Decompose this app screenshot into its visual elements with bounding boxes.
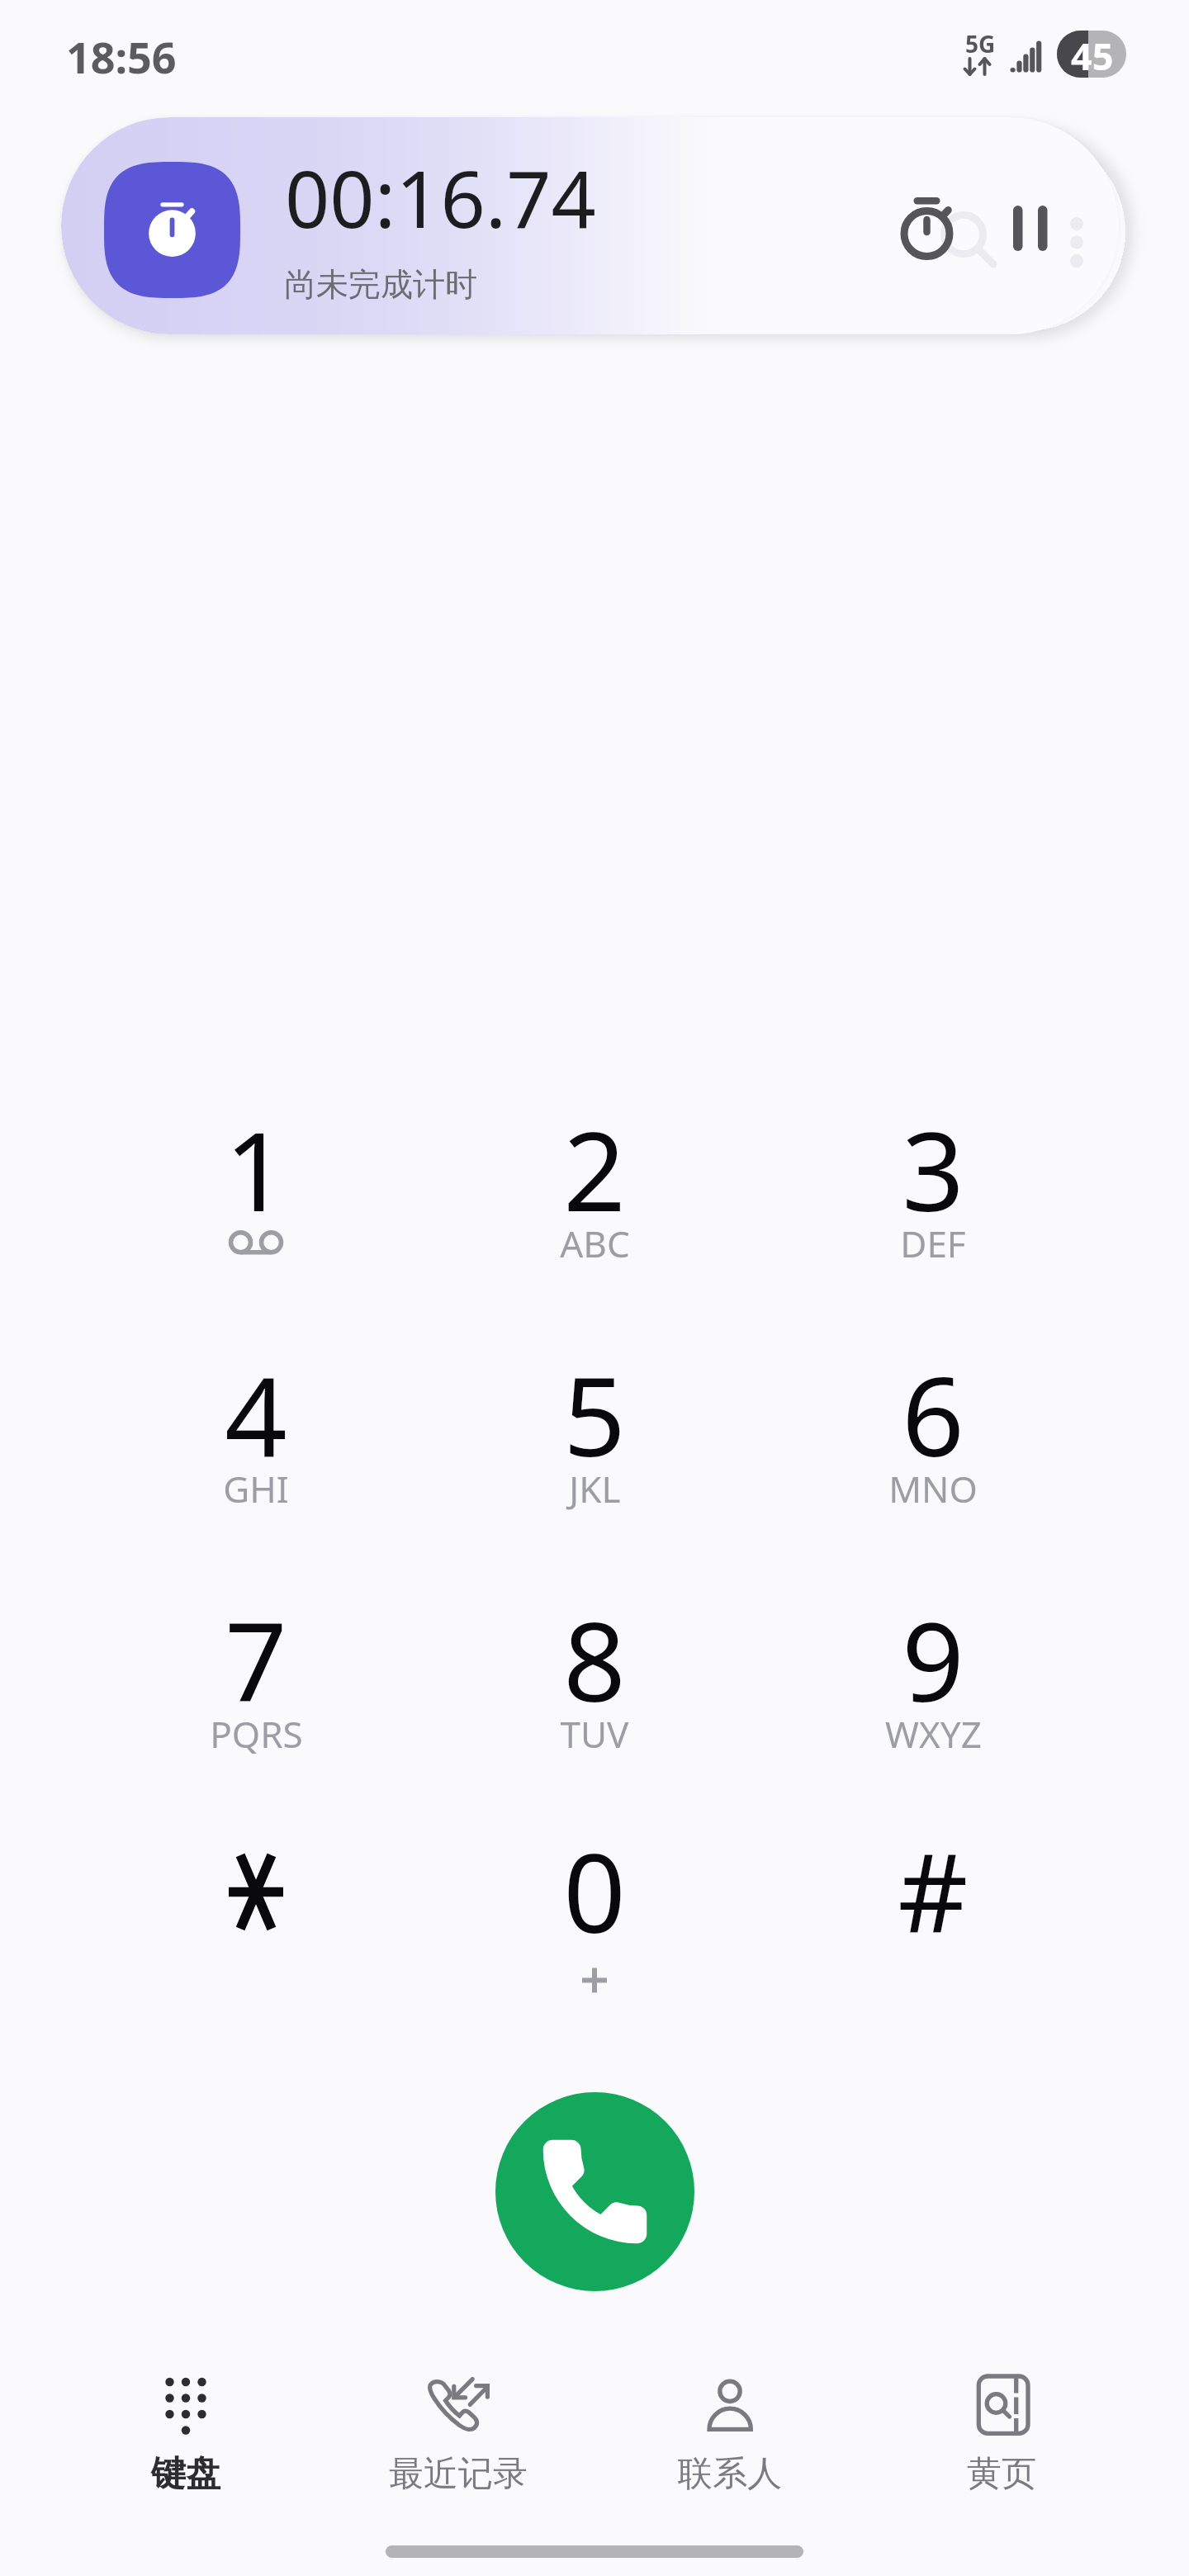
staticText: 2 (563, 1095, 626, 1243)
staticText: WXYZ (885, 1709, 982, 1759)
staticText: 3 (902, 1095, 964, 1243)
staticText: 18:56 (66, 27, 177, 86)
staticText: MNO (888, 1464, 978, 1513)
staticText: 7 (225, 1585, 287, 1734)
button[interactable]: More options (1055, 183, 1098, 274)
staticText: 4 (225, 1340, 287, 1489)
button[interactable]: 5 (454, 1286, 735, 1501)
button[interactable]: Lap (879, 175, 986, 282)
button[interactable]: 黄页 (865, 2368, 1138, 2525)
button[interactable]: Pause (999, 183, 1054, 274)
staticText: GHI (223, 1464, 289, 1513)
staticText: 尚未完成计时 (284, 264, 477, 305)
button[interactable]: 7 (116, 1532, 396, 1746)
button[interactable]: 键盘 (50, 2368, 322, 2525)
staticText: 5 (563, 1340, 626, 1489)
staticText: 6 (902, 1340, 964, 1489)
staticText: 1 (225, 1095, 287, 1243)
staticText: 键盘 (151, 2452, 220, 2496)
button[interactable]: 最近记录 (322, 2368, 594, 2525)
staticText: 最近记录 (389, 2452, 528, 2496)
button[interactable]: 0 (454, 1763, 735, 1977)
staticText: 联系人 (678, 2452, 782, 2496)
button[interactable]: 9 (793, 1532, 1073, 1746)
staticText: JKL (569, 1464, 621, 1513)
staticText: 5G (965, 28, 996, 59)
button[interactable] (116, 1763, 396, 1977)
staticText: 8 (563, 1585, 626, 1734)
button[interactable]: 00:16.74 (61, 117, 1119, 334)
staticText: PQRS (210, 1709, 303, 1759)
button[interactable]: 6 (793, 1286, 1073, 1501)
button[interactable]: 3 (793, 1041, 1073, 1256)
button[interactable]: # (793, 1763, 1073, 1977)
staticText: # (898, 1816, 969, 1965)
button[interactable]: 8 (454, 1532, 735, 1746)
button[interactable]: 1 (116, 1041, 396, 1256)
staticText: 00:16.74 (285, 144, 596, 250)
button[interactable]: 2 (454, 1041, 735, 1256)
staticText: 9 (902, 1585, 964, 1734)
button[interactable]: Call (495, 2092, 694, 2291)
staticText: DEF (900, 1219, 966, 1268)
staticText: ABC (560, 1219, 630, 1268)
button[interactable]: 4 (116, 1286, 396, 1501)
staticText: TUV (560, 1709, 629, 1759)
staticText: 45 (1071, 31, 1114, 78)
staticText: 0 (563, 1816, 626, 1965)
button[interactable]: 联系人 (594, 2368, 866, 2525)
staticText: 黄页 (967, 2452, 1036, 2496)
